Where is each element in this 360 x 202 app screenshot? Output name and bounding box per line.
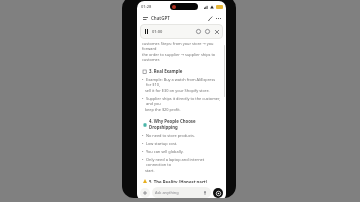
staticText: ChatGPT bbox=[151, 15, 170, 21]
staticText: 01:28 bbox=[141, 4, 152, 9]
staticText: sell it for $30 on your Shopify store. bbox=[145, 88, 210, 93]
staticText: 4. Why People Choose Dropshipping bbox=[149, 118, 221, 130]
staticText: • bbox=[142, 157, 144, 162]
button[interactable]: Add attachment bbox=[140, 188, 150, 198]
staticText: Low startup cost. bbox=[146, 141, 178, 146]
button[interactable]: Forward 15 seconds bbox=[204, 28, 211, 35]
staticText: the order to supplier → supplier ships t… bbox=[142, 52, 216, 57]
staticText: • bbox=[142, 96, 144, 101]
staticText: 3. Real Example bbox=[149, 68, 183, 74]
staticText: 5. The Reality (Honest part) bbox=[149, 179, 208, 183]
staticText: customer. Steps: from your store → you f… bbox=[142, 41, 221, 52]
staticText: Ask anything bbox=[155, 190, 179, 195]
button[interactable]: New chat bbox=[206, 14, 214, 22]
button[interactable]: Voice input bbox=[202, 190, 208, 196]
button[interactable]: More options bbox=[214, 14, 222, 22]
staticText: • bbox=[142, 149, 144, 154]
staticText: customer. bbox=[142, 57, 160, 62]
staticText: No need to store products. bbox=[146, 133, 195, 138]
staticText: 01:00 bbox=[152, 29, 163, 34]
button[interactable]: Rewind 15 seconds bbox=[195, 28, 202, 35]
staticText: start. bbox=[145, 168, 155, 173]
button[interactable]: Menu bbox=[141, 14, 149, 22]
staticText: • bbox=[142, 77, 144, 82]
staticText: • bbox=[142, 141, 144, 146]
staticText: You can sell globally. bbox=[146, 149, 184, 154]
staticText: Supplier ships it directly to the custom… bbox=[146, 96, 221, 107]
button[interactable]: Close player bbox=[213, 28, 220, 35]
staticText: Only need a laptop and internet connecti… bbox=[146, 157, 221, 168]
staticText: Example: Buy a watch from AliExpress for… bbox=[146, 77, 221, 88]
staticText: • bbox=[142, 133, 144, 138]
button[interactable]: Voice mode bbox=[213, 188, 223, 198]
button[interactable]: Pause bbox=[143, 28, 150, 35]
staticText: keep the $20 profit. bbox=[145, 107, 181, 112]
button[interactable]: Ask anything bbox=[152, 187, 211, 198]
